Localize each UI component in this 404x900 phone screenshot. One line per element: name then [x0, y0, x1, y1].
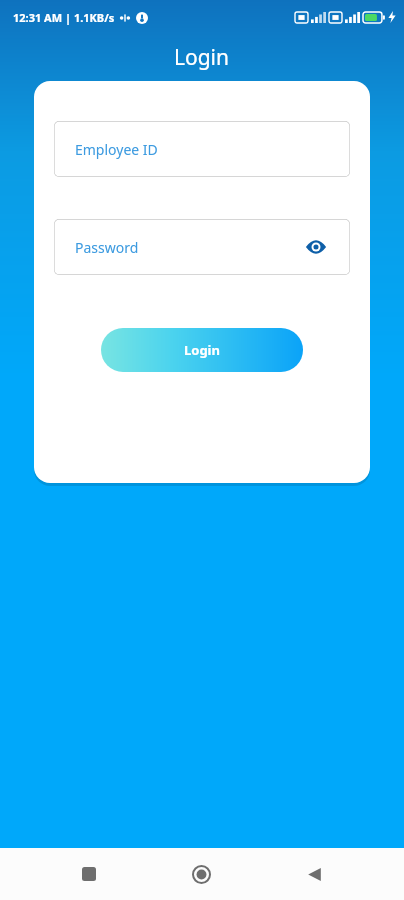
button[interactable]: Home	[178, 851, 224, 897]
button[interactable]: Employee ID	[54, 121, 350, 177]
button[interactable]: Login	[101, 328, 303, 372]
staticText: Employee ID	[75, 140, 158, 159]
staticText: Password	[75, 238, 139, 257]
button[interactable]: Show password	[303, 234, 329, 260]
button[interactable]: Back	[291, 851, 337, 897]
button[interactable]: Recents	[66, 851, 112, 897]
button[interactable]: Password	[54, 219, 350, 275]
staticText: Login	[184, 341, 220, 359]
staticText: Login	[174, 43, 230, 72]
staticText: 12:31 AM | 1.1KB/s	[13, 10, 115, 25]
